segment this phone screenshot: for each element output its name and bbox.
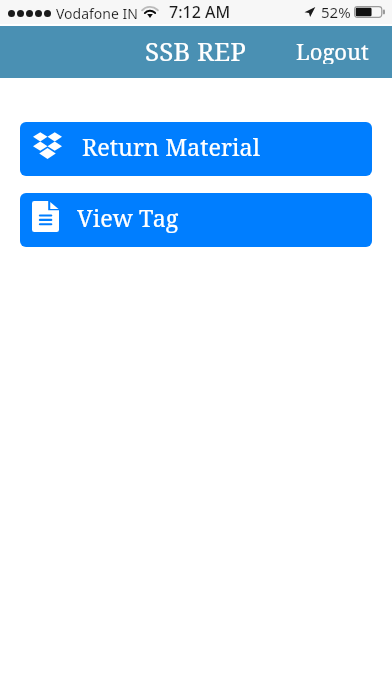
staticText: 7:12 AM <box>169 1 231 23</box>
button[interactable]: View Tag <box>20 193 372 247</box>
staticText: SSB REP <box>145 33 247 68</box>
staticText: Return Material <box>82 131 260 163</box>
button[interactable]: Logout <box>273 24 392 76</box>
staticText: Logout <box>296 36 369 64</box>
staticText: View Tag <box>77 202 179 234</box>
staticText: Vodafone IN <box>56 4 138 23</box>
button[interactable]: Return Material <box>20 122 372 176</box>
staticText: 52% <box>321 2 351 22</box>
